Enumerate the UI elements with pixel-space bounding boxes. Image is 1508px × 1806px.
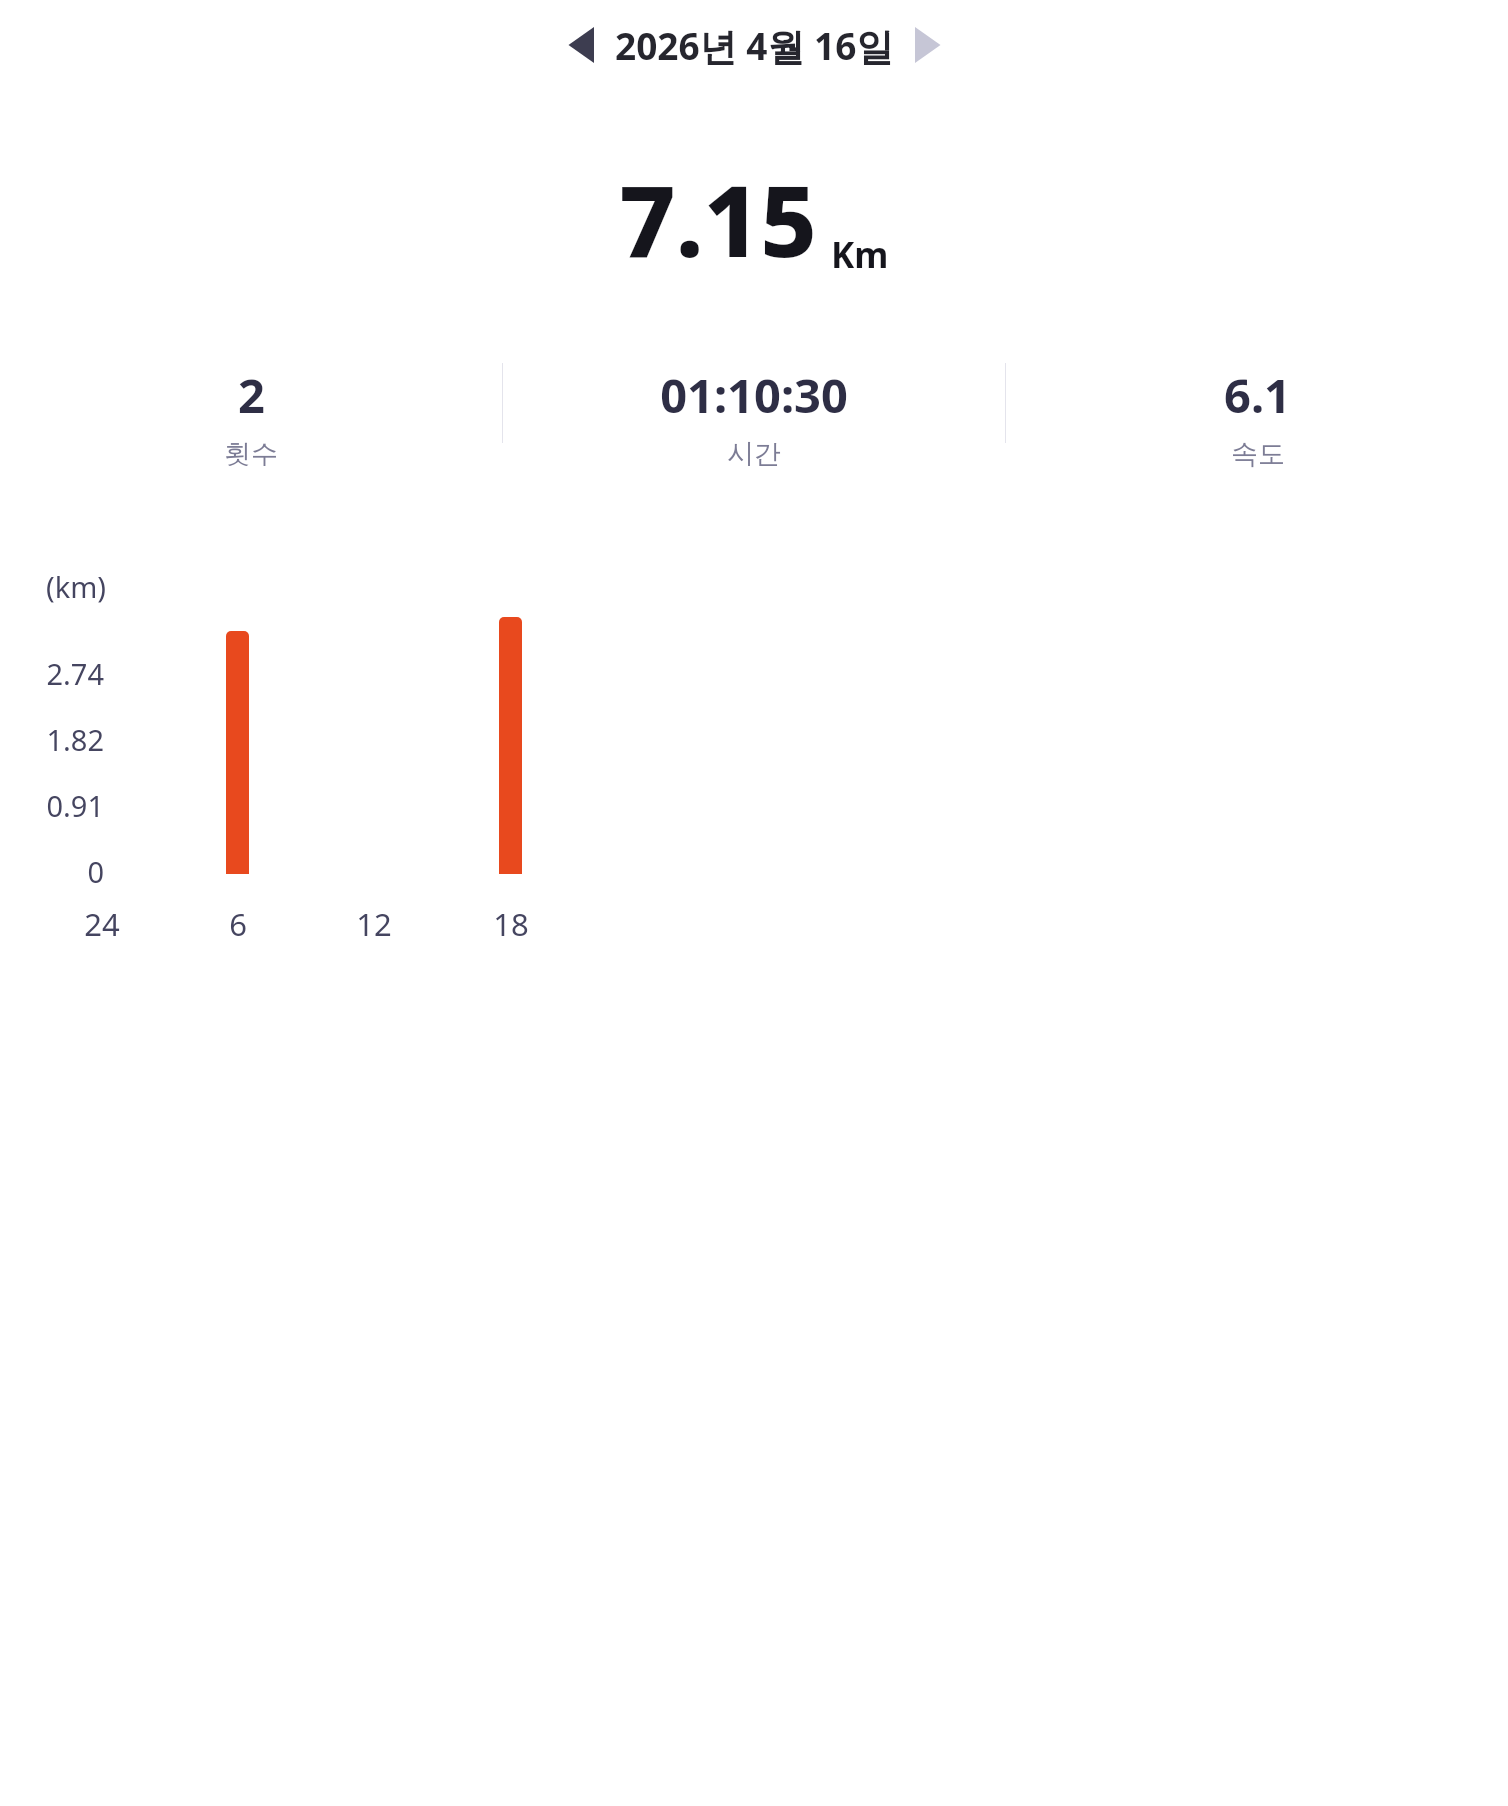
button[interactable]: 01:10:30 [660, 363, 848, 471]
button[interactable]: Previous day [549, 12, 615, 78]
button[interactable]: 6.1 [1224, 363, 1291, 471]
staticText: 7.15 [619, 152, 817, 285]
staticText: Km [831, 231, 889, 279]
button[interactable]: 3.0 kilometres at 18 o'clock [499, 617, 522, 874]
staticText: 0 [87, 852, 104, 891]
staticText: 2.74 [46, 654, 104, 693]
staticText: (km) [46, 567, 107, 606]
staticText: 01:10:30 [660, 363, 848, 427]
staticText: 6 [229, 903, 247, 945]
button[interactable]: Next day [894, 12, 960, 78]
staticText: 2026년 4월 16일 [615, 20, 894, 71]
staticText: 24 [84, 903, 120, 945]
staticText: 12 [356, 903, 392, 945]
button[interactable]: 2026년 4월 16일 [615, 20, 894, 71]
staticText: 18 [493, 903, 529, 945]
button[interactable]: 2 [224, 363, 278, 471]
button[interactable]: 2.74 kilometres at 6 o'clock [226, 631, 249, 874]
staticText: 1.82 [46, 720, 104, 759]
staticText: 횟수 [224, 437, 278, 471]
staticText: 0.91 [46, 786, 104, 825]
staticText: 시간 [727, 437, 781, 471]
staticText: 2 [238, 363, 265, 427]
staticText: 6.1 [1224, 363, 1291, 427]
staticText: 속도 [1231, 437, 1285, 471]
